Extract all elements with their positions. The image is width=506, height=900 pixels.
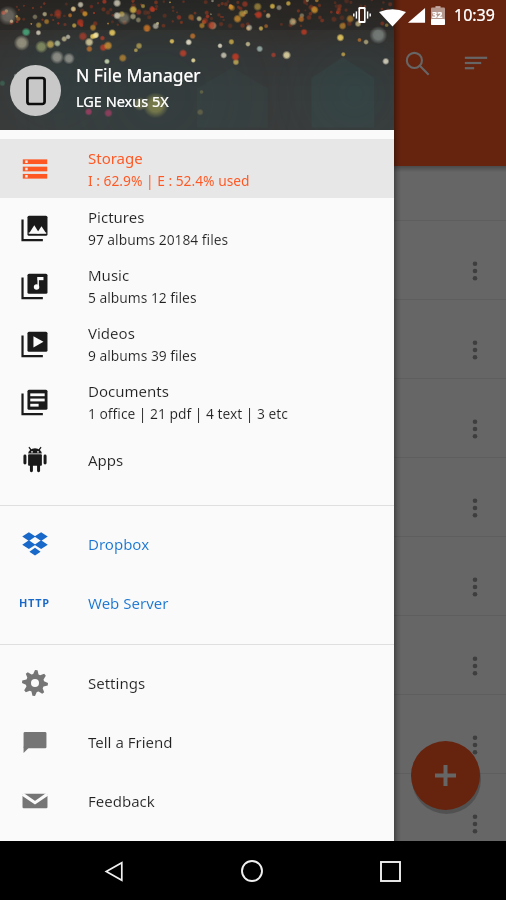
staticText: Documents — [88, 381, 169, 401]
staticText: 1 office | 21 pdf | 4 text | 3 etc — [88, 404, 288, 423]
button[interactable]: More options — [0, 616, 506, 694]
staticText: Web Server — [88, 593, 169, 613]
button[interactable]: More options — [0, 300, 506, 378]
button[interactable]: More options — [0, 221, 506, 299]
staticText: 5 albums 12 files — [88, 288, 197, 307]
button[interactable]: Videos — [0, 314, 394, 373]
button[interactable]: Apps — [0, 430, 394, 489]
button[interactable]: More options — [0, 695, 506, 773]
staticText: Dropbox — [88, 534, 150, 554]
staticText: Settings — [88, 673, 146, 693]
button[interactable]: Tell a Friend — [0, 712, 394, 771]
button[interactable]: More options — [451, 563, 499, 611]
button[interactable]: Settings — [0, 653, 394, 712]
staticText: Music — [88, 265, 130, 285]
staticText: Storage — [72, 50, 145, 77]
staticText: Videos — [88, 323, 135, 343]
button[interactable]: Sort — [452, 39, 500, 87]
button[interactable]: More options — [451, 642, 499, 690]
button[interactable]: More options — [451, 721, 499, 769]
staticText: HTTP — [19, 595, 50, 610]
button[interactable]: Storage — [0, 139, 394, 198]
staticText: Apps — [88, 450, 124, 470]
button[interactable]: More options — [0, 537, 506, 615]
button[interactable]: Back — [93, 849, 137, 893]
button[interactable]: More options — [451, 247, 499, 295]
staticText: Storage — [88, 148, 143, 168]
staticText: N File Manager — [76, 63, 201, 87]
staticText: Pictures — [88, 207, 145, 227]
staticText: I : 62.9% | E : 52.4% used — [88, 171, 250, 190]
staticText: Tell a Friend — [88, 732, 173, 752]
button[interactable]: More options — [451, 326, 499, 374]
button[interactable]: More options — [0, 379, 506, 457]
staticText: 97 albums 20184 files — [88, 230, 229, 249]
button[interactable]: Documents — [0, 372, 394, 431]
button[interactable]: More options — [0, 458, 506, 536]
button[interactable]: More options — [451, 484, 499, 532]
button[interactable]: Music — [0, 256, 394, 315]
button[interactable]: Pictures — [0, 198, 394, 257]
button[interactable]: Search — [393, 39, 441, 87]
button[interactable]: Feedback — [0, 771, 394, 830]
button[interactable]: More options — [0, 774, 506, 852]
button[interactable]: More options — [451, 800, 499, 848]
button[interactable]: Add — [411, 741, 480, 810]
staticText: 9 albums 39 files — [88, 346, 197, 365]
staticText: 32 — [432, 8, 443, 20]
staticText: 10:39 — [454, 4, 495, 26]
button[interactable]: Recents — [368, 849, 412, 893]
button[interactable]: Home — [230, 849, 274, 893]
button[interactable]: HTTP — [0, 573, 394, 632]
button[interactable]: More options — [451, 405, 499, 453]
staticText: Feedback — [88, 791, 155, 811]
button[interactable]: Dropbox — [0, 514, 394, 573]
staticText: LGE Nexus 5X — [76, 91, 169, 111]
